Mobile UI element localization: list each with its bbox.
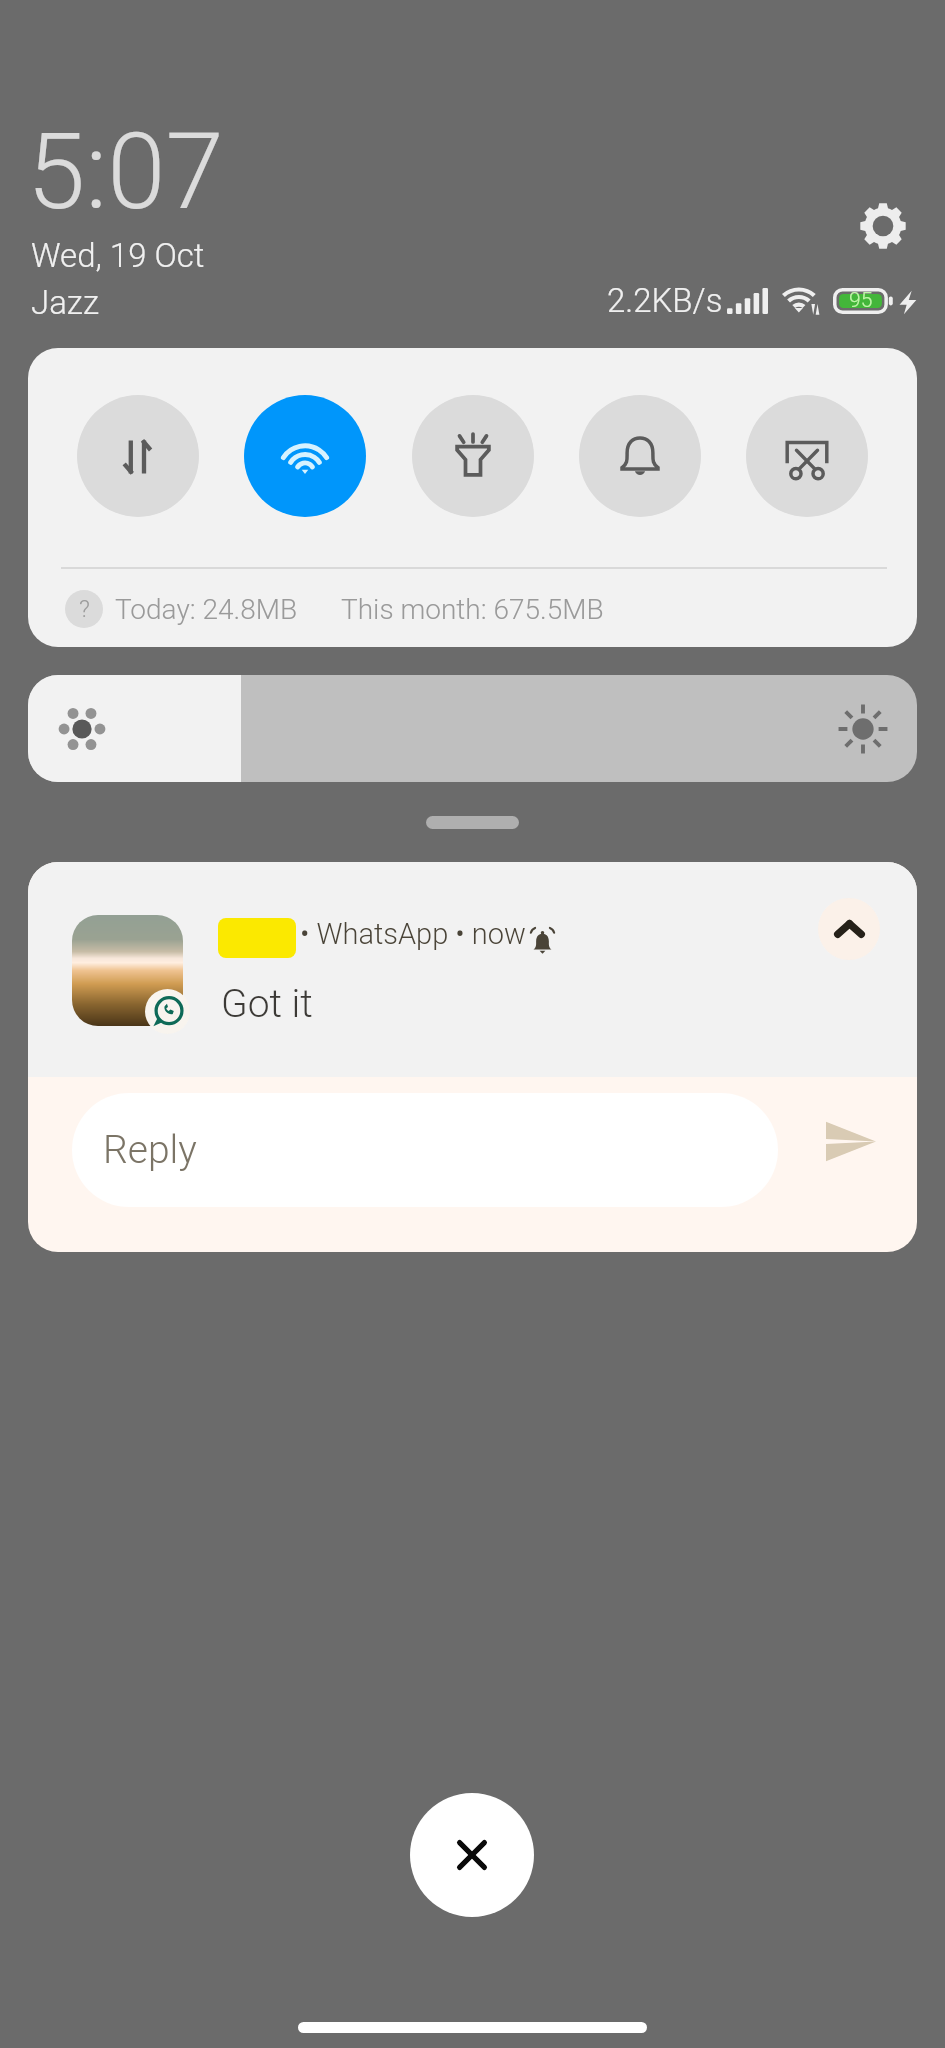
staticText: Today: 24.8MB xyxy=(115,593,298,626)
staticText: • WhatsApp • now xyxy=(300,917,526,951)
button[interactable]: Wi-Fi xyxy=(244,395,366,517)
staticText: Reply xyxy=(103,1127,197,1173)
staticText: Jazz xyxy=(31,283,99,322)
button[interactable]: Send xyxy=(787,1084,914,1198)
button[interactable]: Reply xyxy=(72,1093,778,1207)
button[interactable]: Collapse xyxy=(818,898,880,960)
button[interactable]: Close xyxy=(410,1793,534,1917)
staticText: 5:07 xyxy=(27,111,224,234)
button[interactable]: Settings xyxy=(855,198,911,254)
button[interactable]: Flashlight xyxy=(412,395,534,517)
button[interactable]: Mobile data xyxy=(77,395,199,517)
staticText: ? xyxy=(79,595,90,623)
staticText: This month: 675.5MB xyxy=(341,593,604,626)
button[interactable]: Brightness xyxy=(28,675,917,782)
button[interactable]: Screenshot xyxy=(746,395,868,517)
button[interactable]: Do not disturb xyxy=(579,395,701,517)
staticText: 2.2KB/s xyxy=(607,281,723,320)
staticText: Wed, 19 Oct xyxy=(31,236,205,275)
staticText: 95 xyxy=(849,288,873,313)
staticText: Got it xyxy=(221,981,313,1027)
